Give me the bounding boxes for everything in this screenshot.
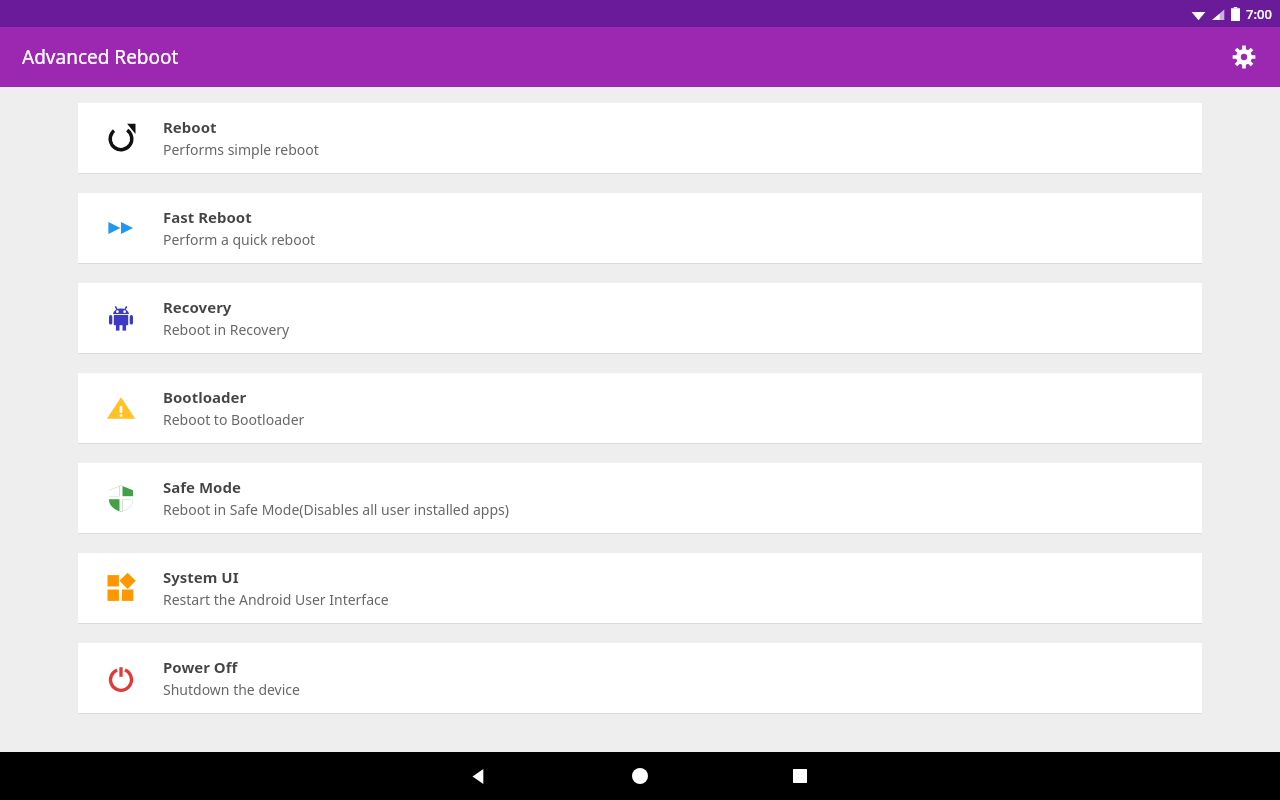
button[interactable]: Power Off — [78, 643, 1202, 713]
staticText: System UI — [163, 567, 239, 587]
staticText: Power Off — [163, 657, 238, 677]
staticText: Safe Mode — [163, 477, 241, 497]
button[interactable]: Reboot — [78, 103, 1202, 173]
staticText: Reboot in Recovery — [163, 320, 290, 339]
button[interactable]: System UI — [78, 553, 1202, 623]
button[interactable]: Home — [616, 752, 664, 800]
staticText: Performs simple reboot — [163, 140, 319, 159]
staticText: Reboot to Bootloader — [163, 410, 305, 429]
staticText: Recovery — [163, 297, 232, 317]
staticText: 7:00 — [1246, 5, 1272, 23]
button[interactable]: Recent apps — [776, 752, 824, 800]
staticText: Bootloader — [163, 387, 247, 407]
staticText: Restart the Android User Interface — [163, 590, 389, 609]
button[interactable]: Bootloader — [78, 373, 1202, 443]
button[interactable]: Recovery — [78, 283, 1202, 353]
button[interactable]: Safe Mode — [78, 463, 1202, 533]
button[interactable]: Settings — [1222, 35, 1266, 79]
button[interactable]: Back — [454, 752, 502, 800]
staticText: Fast Reboot — [163, 207, 252, 227]
staticText: Reboot — [163, 117, 217, 137]
staticText: Shutdown the device — [163, 680, 300, 699]
staticText: Perform a quick reboot — [163, 230, 316, 249]
button[interactable]: Fast Reboot — [78, 193, 1202, 263]
staticText: Advanced Reboot — [22, 44, 179, 70]
staticText: Reboot in Safe Mode(Disables all user in… — [163, 500, 509, 519]
